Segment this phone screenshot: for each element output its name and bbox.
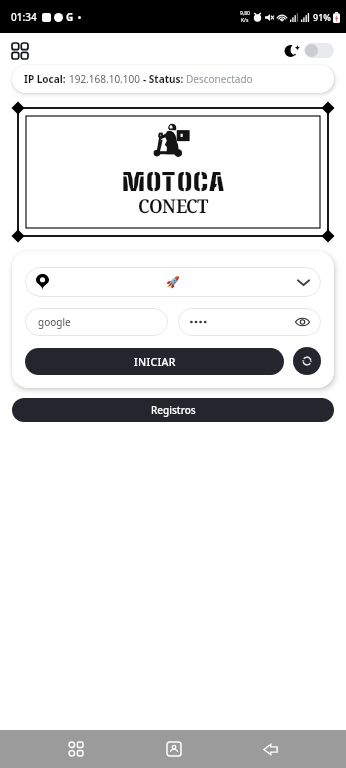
- staticText: 🚀: [166, 276, 180, 289]
- staticText: INICIAR: [134, 355, 176, 369]
- staticText: G: [66, 10, 74, 24]
- button[interactable]: IP Local:: [12, 65, 334, 93]
- staticText: 9,80: [240, 10, 250, 17]
- button[interactable]: Back: [222, 730, 319, 768]
- staticText: Desconectado: [186, 72, 253, 86]
- staticText: 192.168.10.100: [69, 72, 143, 86]
- button[interactable]: Recent apps: [27, 730, 125, 768]
- button[interactable]: Menu: [12, 43, 28, 59]
- button[interactable]: INICIAR: [25, 348, 284, 375]
- button[interactable]: Refresh: [293, 347, 321, 375]
- staticText: google: [38, 315, 71, 329]
- staticText: K/s: [241, 17, 249, 24]
- button[interactable]: [178, 308, 321, 336]
- button[interactable]: Registros: [12, 398, 334, 422]
- staticText: IP Local:: [24, 72, 69, 86]
- button[interactable]: Toggle dark mode: [304, 43, 334, 58]
- staticText: 91%: [313, 11, 331, 23]
- staticText: - Status:: [143, 72, 186, 86]
- button[interactable]: 🚀: [25, 267, 321, 297]
- button[interactable]: google: [25, 308, 168, 336]
- staticText: Registros: [151, 403, 196, 417]
- staticText: 01:34: [11, 10, 37, 24]
- button[interactable]: Home: [125, 730, 222, 768]
